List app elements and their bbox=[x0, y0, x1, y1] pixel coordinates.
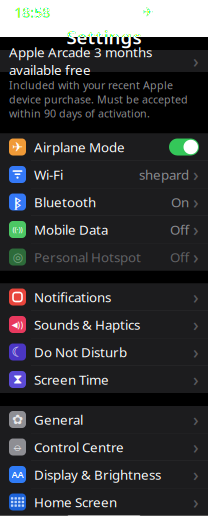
button[interactable]: ✈ bbox=[0, 133, 208, 160]
staticText: Display & Brightness bbox=[34, 466, 161, 483]
staticText: Home Screen bbox=[34, 493, 117, 511]
staticText: Do Not Disturb bbox=[34, 343, 127, 361]
staticText: Mobile Data bbox=[34, 221, 108, 238]
staticText: 18:58 bbox=[14, 2, 50, 22]
staticText: AA bbox=[11, 468, 23, 481]
staticText: Settings bbox=[66, 25, 141, 49]
button[interactable]: ⦵ bbox=[0, 433, 208, 460]
staticText: Airplane Mode bbox=[34, 138, 125, 156]
staticText: Wi-Fi bbox=[34, 166, 63, 183]
button[interactable]: Notifications bbox=[0, 283, 208, 310]
staticText: ◀)) bbox=[11, 319, 23, 330]
staticText: Sounds & Haptics bbox=[34, 316, 140, 333]
staticText: › bbox=[193, 218, 199, 241]
staticText: › bbox=[193, 368, 199, 391]
button[interactable]: ᛒ bbox=[0, 188, 208, 215]
staticText: › bbox=[193, 163, 199, 186]
staticText: › bbox=[193, 408, 199, 431]
staticText: On bbox=[171, 193, 189, 211]
staticText: Off bbox=[170, 221, 189, 238]
staticText: Apple Arcade 3 months available free bbox=[9, 43, 152, 79]
staticText: Bluetooth bbox=[34, 193, 96, 211]
staticText: › bbox=[193, 285, 199, 308]
button[interactable]: Wi-Fi bbox=[0, 161, 208, 188]
staticText: ((·)) bbox=[12, 225, 22, 234]
button[interactable]: ((·)) bbox=[0, 216, 208, 243]
staticText: › bbox=[193, 313, 199, 336]
staticText: Notifications bbox=[34, 288, 111, 306]
staticText: ✈ bbox=[12, 139, 23, 154]
staticText: Screen Time bbox=[34, 371, 109, 388]
button[interactable]: Apple Arcade 3 months available free bbox=[0, 50, 208, 72]
staticText: › bbox=[193, 49, 199, 72]
staticText: Off bbox=[170, 248, 189, 266]
staticText: ⧗ bbox=[13, 373, 22, 386]
staticText: ◎ bbox=[12, 250, 22, 264]
staticText: › bbox=[193, 435, 199, 458]
button[interactable]: ◀)) bbox=[0, 311, 208, 338]
staticText: Control Centre bbox=[34, 438, 124, 456]
staticText: ⦵ bbox=[12, 440, 23, 453]
button[interactable]: Home Screen bbox=[0, 488, 208, 515]
staticText: ✿ bbox=[12, 412, 23, 427]
staticText: › bbox=[193, 245, 199, 268]
staticText: › bbox=[193, 490, 199, 513]
button[interactable]: ✿ bbox=[0, 406, 208, 433]
staticText: Personal Hotspot bbox=[34, 248, 141, 266]
button[interactable]: ⧗ bbox=[0, 366, 208, 393]
staticText: › bbox=[193, 340, 199, 363]
staticText: › bbox=[193, 463, 199, 486]
staticText: Included with your recent Apple device p… bbox=[9, 78, 188, 120]
staticText: ☾ bbox=[11, 344, 23, 359]
staticText: shepard bbox=[139, 166, 189, 183]
staticText: ✈ bbox=[142, 4, 153, 19]
staticText: General bbox=[34, 411, 83, 428]
button[interactable]: ☾ bbox=[0, 338, 208, 365]
button[interactable]: ◎ bbox=[0, 243, 208, 270]
staticText: ᛒ bbox=[14, 194, 21, 210]
button[interactable]: AA bbox=[0, 461, 208, 488]
staticText: › bbox=[193, 190, 199, 213]
